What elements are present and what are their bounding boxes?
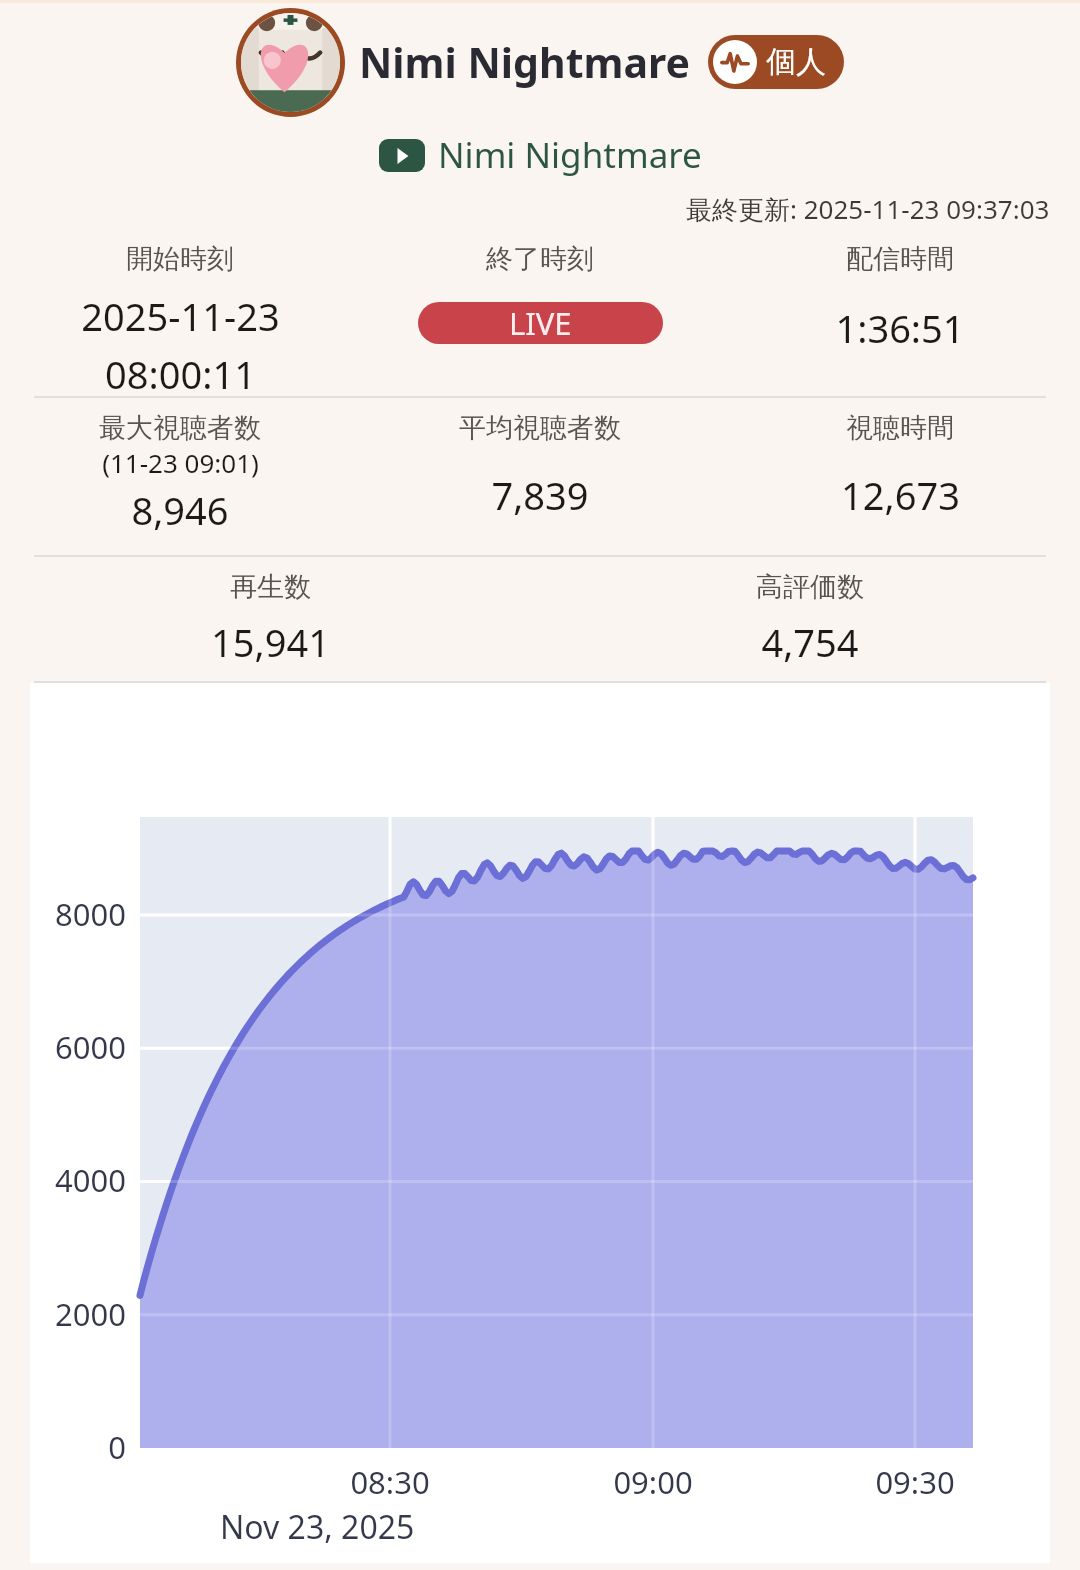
staticText: 4000 bbox=[30, 1159, 126, 1201]
staticText: 08:30 bbox=[320, 1461, 460, 1503]
staticText: 高評価数 bbox=[756, 570, 864, 604]
staticText: 終了時刻 bbox=[486, 242, 594, 276]
staticText: (11-23 09:01) bbox=[102, 445, 259, 480]
staticText: 配信時間 bbox=[846, 242, 954, 276]
staticText: 12,673 bbox=[841, 469, 960, 521]
staticText: 再生数 bbox=[230, 570, 311, 604]
staticText: 1:36:51 bbox=[835, 302, 965, 354]
button[interactable]: 最大視聴者数 bbox=[0, 398, 360, 555]
staticText: 個人 bbox=[766, 43, 826, 81]
staticText: 4,754 bbox=[761, 616, 859, 668]
staticText: 最大視聴者数 bbox=[99, 411, 261, 445]
button[interactable]: 視聴時間 bbox=[720, 398, 1080, 555]
staticText: 7,839 bbox=[491, 469, 589, 521]
staticText: 09:30 bbox=[845, 1461, 985, 1503]
button[interactable]: 終了時刻 bbox=[360, 232, 720, 396]
button[interactable]: Nimi Nightmare bbox=[0, 124, 1080, 186]
staticText: 8,946 bbox=[131, 484, 229, 536]
staticText: 平均視聴者数 bbox=[459, 411, 621, 445]
staticText: 8000 bbox=[30, 893, 126, 935]
staticText: Nimi Nightmare bbox=[438, 131, 702, 179]
staticText: 0 bbox=[30, 1426, 126, 1468]
staticText: 2000 bbox=[30, 1293, 126, 1335]
staticText: 開始時刻 bbox=[126, 242, 234, 276]
staticText: 最終更新: 2025-11-23 09:37:03 bbox=[686, 191, 1050, 227]
staticText: 09:00 bbox=[583, 1461, 723, 1503]
staticText: 視聴時間 bbox=[846, 411, 954, 445]
staticText: 15,941 bbox=[211, 616, 330, 668]
button[interactable]: 配信時間 bbox=[720, 232, 1080, 396]
staticText: Nimi Nightmare bbox=[359, 34, 690, 90]
button[interactable]: 高評価数 bbox=[540, 557, 1080, 681]
button[interactable]: 平均視聴者数 bbox=[360, 398, 720, 555]
staticText: 6000 bbox=[30, 1026, 126, 1068]
staticText: 08:00:11 bbox=[105, 348, 256, 396]
button[interactable]: 再生数 bbox=[0, 557, 540, 681]
staticText: 2025-11-23 bbox=[81, 290, 280, 342]
button[interactable]: 個人 bbox=[708, 35, 844, 89]
staticText: Nov 23, 2025 bbox=[220, 1505, 415, 1549]
staticText: LIVE bbox=[509, 302, 572, 344]
button[interactable]: Channel avatar bbox=[236, 8, 345, 117]
button[interactable]: 開始時刻 bbox=[0, 232, 360, 396]
